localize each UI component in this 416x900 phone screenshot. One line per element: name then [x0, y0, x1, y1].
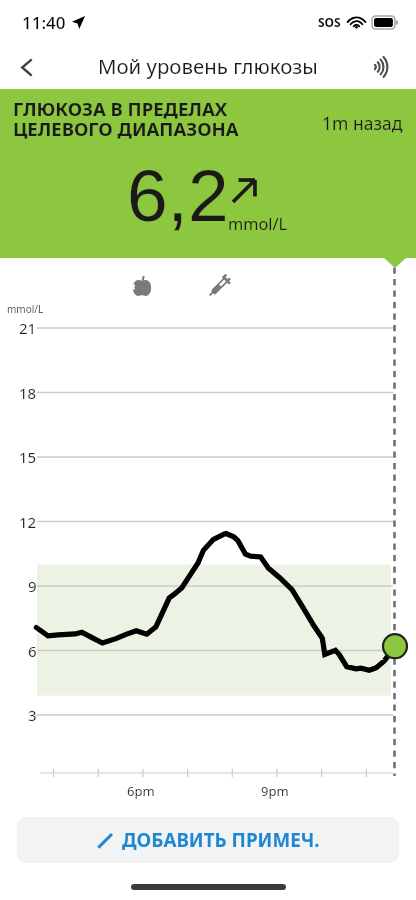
staticText: 6pm	[127, 782, 155, 800]
staticText: 15	[19, 447, 37, 467]
staticText: ГЛЮКОЗА В ПРЕДЕЛАХ	[13, 96, 228, 121]
staticText: mmol/L	[7, 302, 44, 316]
staticText: SOS	[318, 14, 341, 30]
staticText: ЦЕЛЕВОГО ДИАПАЗОНА	[13, 116, 239, 141]
staticText: 9pm	[261, 782, 289, 800]
button[interactable]: Back	[4, 45, 48, 89]
staticText: ДОБАВИТЬ ПРИМЕЧ.	[122, 827, 320, 853]
staticText: mmol/L	[228, 213, 288, 235]
staticText: 9	[28, 576, 37, 596]
staticText: 6,2	[127, 155, 229, 237]
staticText: 18	[19, 383, 37, 403]
staticText: Мой уровень глюкозы	[98, 52, 318, 80]
staticText: 6	[28, 641, 37, 661]
staticText: 11:40	[22, 11, 66, 34]
staticText: 3	[28, 705, 37, 725]
staticText: 1m назад	[322, 111, 403, 135]
button[interactable]: ДОБАВИТЬ ПРИМЕЧ.	[17, 817, 399, 863]
staticText: 21	[19, 318, 37, 338]
staticText: 12	[19, 512, 37, 532]
button[interactable]: Scan sensor	[363, 48, 401, 86]
